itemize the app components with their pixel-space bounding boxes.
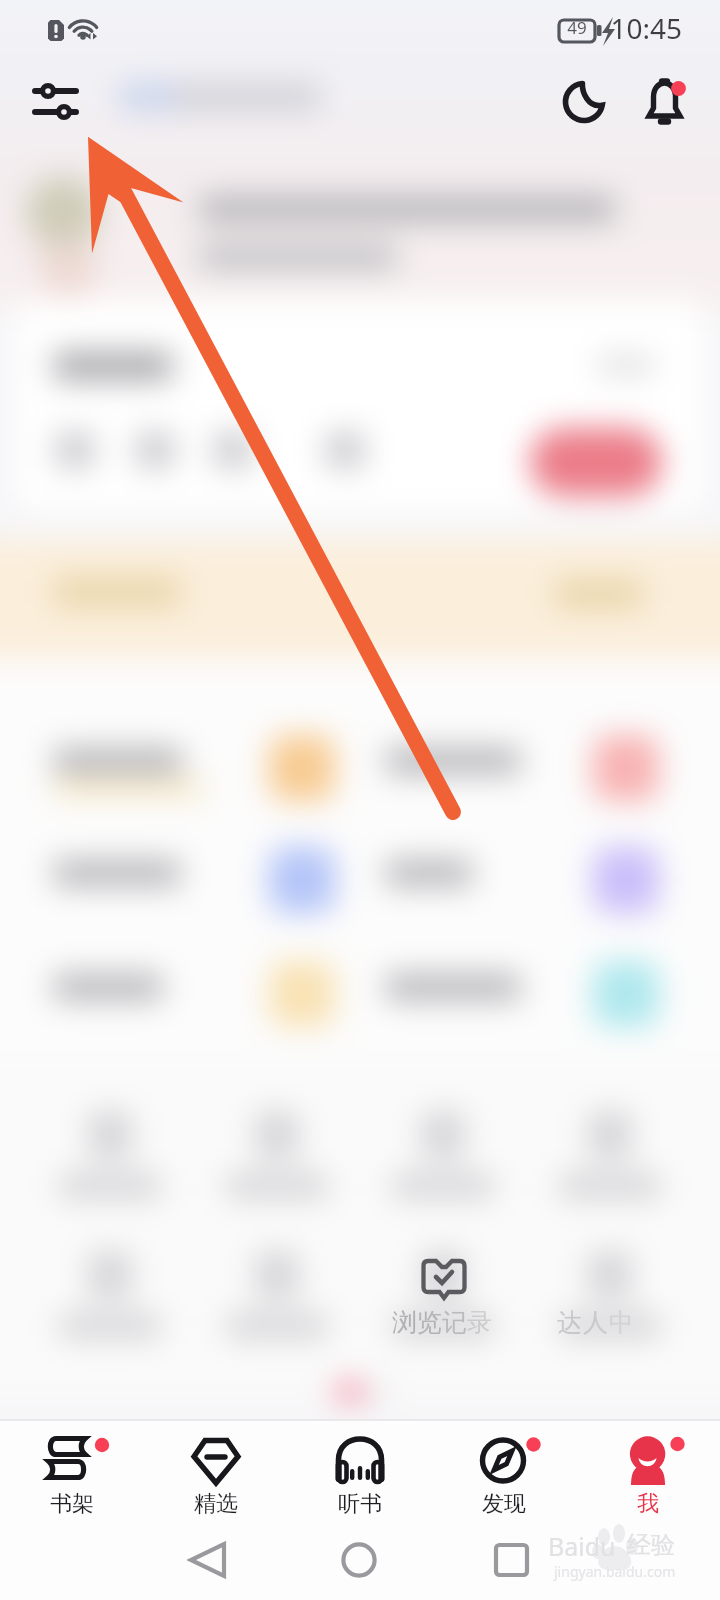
button[interactable]: 精选 bbox=[144, 1421, 288, 1522]
staticText: 览 bbox=[417, 1307, 442, 1338]
staticText: 达 bbox=[557, 1307, 582, 1338]
button[interactable]: 发现 bbox=[432, 1421, 576, 1522]
staticText: 精选 bbox=[194, 1490, 238, 1518]
staticText: 发现 bbox=[482, 1490, 526, 1518]
button[interactable]: 听书 bbox=[288, 1421, 432, 1522]
button[interactable]: Notifications bbox=[644, 76, 690, 122]
button[interactable]: Browse history bbox=[416, 1252, 470, 1306]
staticText: 10:45 bbox=[540, 9, 682, 47]
button[interactable]: Night mode bbox=[562, 80, 608, 126]
staticText: 书架 bbox=[50, 1490, 94, 1518]
staticText: 录 bbox=[467, 1307, 492, 1338]
staticText: 49 bbox=[562, 16, 592, 39]
staticText: 中 bbox=[609, 1307, 634, 1338]
staticText: Baidu bbox=[548, 1529, 616, 1563]
staticText: 浏 bbox=[392, 1307, 417, 1338]
staticText: 听书 bbox=[338, 1490, 382, 1518]
staticText: jingyan.baidu.com bbox=[554, 1562, 676, 1581]
staticText: 我 bbox=[637, 1490, 659, 1518]
button[interactable]: 我 bbox=[576, 1421, 720, 1522]
button[interactable]: Settings bbox=[22, 76, 82, 136]
staticText: 经验 bbox=[627, 1530, 675, 1560]
staticText: 记 bbox=[442, 1307, 467, 1338]
button[interactable]: 书架 bbox=[0, 1421, 144, 1522]
staticText: 人 bbox=[583, 1307, 608, 1338]
